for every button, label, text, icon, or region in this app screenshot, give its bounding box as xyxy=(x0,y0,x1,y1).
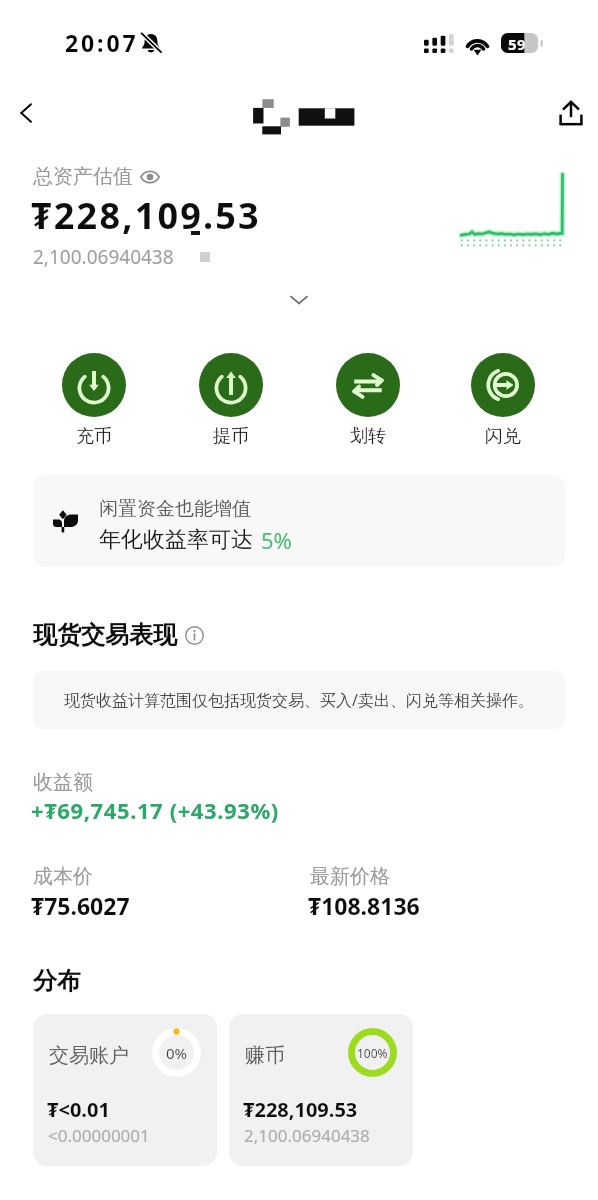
button[interactable]: Share xyxy=(551,93,591,133)
staticText: 闪兑 xyxy=(485,425,521,448)
staticText: 2,100.06940438 xyxy=(33,244,174,270)
button[interactable]: 划转 xyxy=(326,353,410,448)
staticText: <0.00000001 xyxy=(48,1124,150,1147)
staticText: 5% xyxy=(261,525,292,555)
staticText: +₮69,745.17 (+43.93%) xyxy=(31,795,279,825)
staticText: 现货交易表现 xyxy=(33,620,177,650)
staticText: 100% xyxy=(357,1045,388,1061)
staticText: 2,100.06940438 xyxy=(244,1124,370,1147)
staticText: 9 xyxy=(517,34,526,54)
button[interactable]: 提币 xyxy=(189,353,273,448)
button[interactable]: 交易账户 xyxy=(33,1014,217,1166)
staticText: 收益额 xyxy=(33,770,93,795)
staticText: 分布 xyxy=(33,966,81,996)
staticText: 划转 xyxy=(350,425,386,448)
staticText: ₮108.8136 xyxy=(308,890,420,921)
staticText: 最新价格 xyxy=(310,864,390,889)
staticText: 年化收益率可达 xyxy=(99,526,253,554)
staticText: ₮228,109.53 xyxy=(31,191,261,240)
staticText: 5 xyxy=(508,34,517,54)
staticText: 提币 xyxy=(213,425,249,448)
staticText: ₮228,109.53 xyxy=(243,1096,358,1123)
staticText: ₮75.6027 xyxy=(31,890,130,921)
button[interactable]: Hide balance xyxy=(140,167,160,187)
staticText: 交易账户 xyxy=(49,1043,129,1068)
button[interactable]: Info xyxy=(185,626,204,645)
staticText: 充币 xyxy=(76,425,112,448)
staticText: 赚币 xyxy=(245,1043,285,1068)
staticText: 20:07 xyxy=(65,27,139,58)
staticText: 闲置资金也能增值 xyxy=(99,497,251,521)
staticText: 现货收益计算范围仅包括现货交易、买入/卖出、闪兑等相关操作。 xyxy=(64,689,534,711)
staticText: 总资产估值 xyxy=(33,164,133,189)
button[interactable]: 闲置资金也能增值 xyxy=(33,475,565,567)
button[interactable]: 充币 xyxy=(52,353,136,448)
button[interactable]: 闪兑 xyxy=(461,353,545,448)
staticText: ₮<0.01 xyxy=(47,1096,110,1123)
button[interactable]: Expand xyxy=(281,282,317,318)
button[interactable]: 赚币 xyxy=(229,1014,413,1166)
staticText: 0% xyxy=(166,1043,188,1063)
button[interactable]: Back xyxy=(7,93,47,133)
staticText: 成本价 xyxy=(33,864,93,889)
